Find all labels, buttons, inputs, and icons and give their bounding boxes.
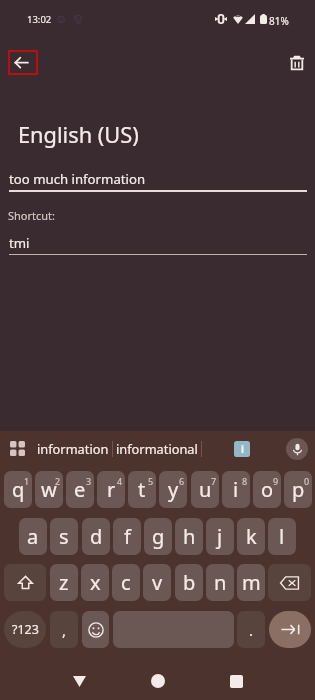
staticText: k bbox=[246, 523, 257, 550]
staticText: n bbox=[214, 569, 227, 596]
button[interactable]: m bbox=[237, 564, 265, 601]
staticText: , bbox=[62, 620, 67, 640]
staticText: ?123 bbox=[12, 621, 39, 638]
button[interactable]: i bbox=[222, 471, 250, 508]
staticText: English (US) bbox=[18, 120, 139, 150]
staticText: b bbox=[183, 569, 196, 596]
button[interactable]: k bbox=[237, 518, 265, 555]
staticText: j bbox=[217, 523, 223, 550]
button[interactable]: z bbox=[50, 564, 78, 601]
staticText: y bbox=[168, 476, 179, 503]
button[interactable]: x bbox=[81, 564, 109, 601]
button[interactable]: Home bbox=[138, 661, 178, 700]
staticText: r bbox=[107, 476, 116, 503]
button[interactable]: w bbox=[35, 471, 63, 508]
button[interactable]: h bbox=[175, 518, 203, 555]
button[interactable]: p bbox=[284, 471, 312, 508]
button[interactable]: . bbox=[237, 611, 265, 648]
staticText: m bbox=[242, 569, 261, 596]
button[interactable]: Shift bbox=[4, 564, 46, 601]
staticText: v bbox=[152, 569, 163, 596]
staticText: tmi bbox=[9, 234, 30, 252]
button[interactable]: d bbox=[82, 518, 110, 555]
button[interactable]: o bbox=[253, 471, 281, 508]
staticText: e bbox=[74, 476, 86, 503]
staticText: information bbox=[37, 440, 109, 457]
button[interactable]: Emoji bbox=[82, 611, 109, 648]
staticText: 7 bbox=[211, 475, 217, 487]
button[interactable]: informational bbox=[114, 436, 200, 460]
staticText: 3 bbox=[86, 475, 92, 487]
staticText: c bbox=[121, 569, 131, 596]
staticText: q bbox=[12, 476, 25, 503]
button[interactable]: Delete bbox=[290, 54, 304, 71]
staticText: 1 bbox=[24, 475, 30, 487]
staticText: 9 bbox=[273, 475, 279, 487]
staticText: a bbox=[27, 523, 39, 550]
button[interactable]: c bbox=[112, 564, 140, 601]
staticText: 8 bbox=[242, 475, 248, 487]
staticText: too much information bbox=[9, 170, 146, 188]
staticText: 2 bbox=[55, 475, 61, 487]
staticText: d bbox=[90, 523, 103, 550]
button[interactable]: t bbox=[128, 471, 156, 508]
staticText: informational bbox=[116, 440, 198, 457]
staticText: 5 bbox=[148, 475, 154, 487]
button[interactable]: l bbox=[268, 518, 296, 555]
button[interactable]: e bbox=[66, 471, 94, 508]
staticText: g bbox=[152, 523, 165, 550]
staticText: f bbox=[124, 523, 131, 550]
button[interactable]: Recent apps bbox=[216, 661, 256, 700]
staticText: 81% bbox=[269, 14, 289, 28]
button[interactable]: ?123 bbox=[4, 611, 46, 648]
staticText: Shortcut: bbox=[8, 208, 56, 223]
staticText: i bbox=[241, 442, 244, 456]
button[interactable]: Enter bbox=[269, 611, 311, 648]
staticText: w bbox=[41, 476, 57, 503]
button[interactable]: , bbox=[50, 611, 78, 648]
staticText: p bbox=[292, 476, 305, 503]
button[interactable]: q bbox=[4, 471, 32, 508]
button[interactable]: Navigate up bbox=[8, 50, 38, 75]
staticText: l bbox=[279, 523, 285, 550]
button[interactable]: v bbox=[143, 564, 171, 601]
staticText: 13:02 bbox=[27, 13, 52, 26]
staticText: . bbox=[249, 620, 254, 640]
button[interactable]: information bbox=[34, 436, 112, 460]
staticText: z bbox=[59, 569, 69, 596]
button[interactable]: r bbox=[97, 471, 125, 508]
button[interactable]: j bbox=[206, 518, 234, 555]
staticText: i bbox=[233, 476, 239, 503]
button[interactable]: b bbox=[175, 564, 203, 601]
staticText: u bbox=[199, 476, 212, 503]
staticText: 0 bbox=[304, 475, 310, 487]
staticText: h bbox=[183, 523, 196, 550]
button[interactable]: a bbox=[19, 518, 47, 555]
staticText: 6 bbox=[179, 475, 185, 487]
button[interactable]: y bbox=[159, 471, 187, 508]
button[interactable]: Backspace bbox=[268, 564, 311, 601]
button[interactable]: s bbox=[50, 518, 78, 555]
staticText: 4 bbox=[117, 475, 123, 487]
staticText: t bbox=[138, 476, 146, 503]
button[interactable]: n bbox=[206, 564, 234, 601]
button[interactable]: Space bbox=[113, 611, 234, 648]
button[interactable]: Voice input bbox=[286, 438, 308, 460]
staticText: s bbox=[59, 523, 69, 550]
button[interactable]: Toolbar bbox=[10, 441, 25, 456]
button[interactable]: u bbox=[191, 471, 219, 508]
button[interactable]: Back bbox=[59, 661, 99, 700]
staticText: o bbox=[261, 476, 274, 503]
button[interactable]: f bbox=[113, 518, 141, 555]
button[interactable]: Info bbox=[234, 441, 250, 457]
button[interactable]: g bbox=[144, 518, 172, 555]
staticText: x bbox=[90, 569, 101, 596]
